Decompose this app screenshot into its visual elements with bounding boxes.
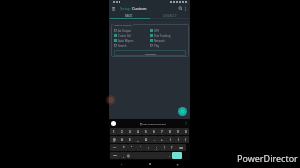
button[interactable]: 7 [158,128,166,135]
staticText: . [169,154,170,158]
staticText: CONFIRM [145,52,156,55]
staticText: 1 [113,130,115,134]
staticText: ' [140,146,141,150]
staticText: 3 [129,130,131,134]
staticText: ADVANCED [163,14,177,18]
button[interactable]: ' [136,144,144,151]
button[interactable]: ! [160,144,168,151]
staticText: $ [129,138,131,142]
staticText: ; [156,146,157,150]
staticText: ⌫ [179,146,183,149]
button[interactable]: Back [120,163,123,166]
button[interactable]: =\< [110,144,120,151]
staticText: ABC [113,154,118,157]
button[interactable]: Recents [176,163,179,166]
staticText: =\< [113,146,117,149]
staticText: Play [154,44,160,48]
button[interactable]: 8 [166,128,174,135]
staticText: * [123,146,125,150]
button[interactable]: Add [178,107,187,116]
staticText: ! [164,146,165,150]
button[interactable]: More options [183,6,188,11]
button[interactable]: Cruise Ctrl [114,33,150,38]
staticText: 5 [145,130,147,134]
button[interactable]: Dim Tracking [150,33,186,38]
button[interactable]: 2 [118,128,126,135]
button[interactable]: 9 [174,128,182,135]
button[interactable]: $ [126,136,134,143]
staticText: Setup [120,6,132,11]
button[interactable]: 4 [134,128,142,135]
staticText: 8 [169,130,171,134]
staticText: GPS [154,29,160,33]
button[interactable]: 1 [110,128,118,135]
button[interactable]: Menu [111,6,116,11]
button[interactable]: More [184,121,188,125]
staticText: Network [154,39,165,43]
staticText: PowerDirector [237,152,298,164]
button[interactable]: ; [152,144,160,151]
button[interactable]: * [120,144,128,151]
staticText: Custom [132,6,147,11]
staticText: 6 [153,130,155,134]
button[interactable]: ( [166,136,174,143]
staticText: / [185,138,187,142]
button[interactable]: BASIC [109,13,149,18]
staticText: - [154,138,155,142]
staticText: 9 [177,130,179,134]
staticText: @ [113,138,116,142]
button[interactable]: . [166,152,172,159]
staticText: : [148,146,149,150]
button[interactable]: + [158,136,166,143]
button[interactable]: Auto Wipers [114,38,150,43]
button[interactable]: ? [168,144,176,151]
button[interactable]: ☺ [126,152,132,159]
staticText: Get 3 extra accounts [143,122,166,125]
staticText: # [121,138,123,142]
staticText: 4 [137,130,139,134]
button[interactable]: ) [174,136,182,143]
button[interactable]: @ [110,136,118,143]
button[interactable]: ABC [110,152,120,159]
button[interactable]: 6 [150,128,158,135]
button[interactable]: GPS [150,28,186,33]
staticText: BASIC [125,14,133,18]
staticText: Dim Tracking [154,34,171,38]
button[interactable]: # [118,136,126,143]
staticText: 2 [121,130,123,134]
button[interactable]: - [150,136,158,143]
staticText: , [123,154,124,158]
staticText: ) [178,138,179,142]
button[interactable]: , [120,152,126,159]
button[interactable]: Air Output [114,28,150,33]
button[interactable]: ADVANCED [149,13,190,18]
staticText: ( [170,138,171,142]
button[interactable]: ⌫ [176,144,186,151]
staticText: ? [171,146,173,150]
button[interactable]: & [142,136,150,143]
button[interactable]: : [144,144,152,151]
button[interactable]: Network [150,38,186,43]
button[interactable]: 5 [142,128,150,135]
staticText: 7 [161,130,163,134]
button[interactable]: " [128,144,136,151]
button[interactable]: Voice input [111,121,116,126]
button[interactable]: Search [114,43,150,48]
staticText: " [131,146,133,150]
staticText: Auto Wipers [118,39,134,43]
button[interactable]: / [182,136,189,143]
button[interactable]: 3 [126,128,134,135]
button[interactable]: Search [178,6,183,11]
staticText: Cruise Ctrl [118,34,132,38]
button[interactable] [172,152,182,159]
staticText: Vehicle options [114,23,132,26]
button[interactable]: 0 [182,128,189,135]
button[interactable]: _ [134,136,142,143]
staticText: _ [137,138,139,142]
button[interactable]: Play [150,43,186,48]
staticText: 0 [185,130,187,134]
button[interactable]: CONFIRM [114,50,186,56]
staticText: + [161,138,163,142]
